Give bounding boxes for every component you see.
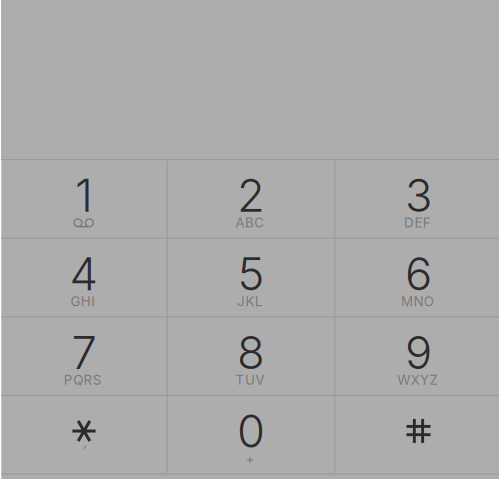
staticText: MNO — [401, 277, 436, 309]
staticText: WXYZ — [397, 356, 440, 388]
staticText — [417, 434, 419, 467]
staticText: 0 — [237, 404, 265, 458]
staticText: 8 — [237, 325, 265, 380]
staticText: PQRS — [64, 356, 104, 388]
button[interactable] — [335, 396, 499, 473]
button[interactable]: 6 — [335, 239, 499, 316]
staticText: 2 — [237, 168, 265, 223]
staticText: 6 — [405, 246, 432, 301]
button[interactable]: 8 — [168, 317, 334, 395]
staticText: + — [245, 434, 257, 467]
button[interactable]: 0 — [168, 396, 334, 473]
staticText: ABC — [235, 199, 266, 231]
staticText: 9 — [405, 325, 432, 380]
staticText: GHI — [70, 277, 97, 309]
button[interactable]: 1 — [1, 160, 167, 238]
button[interactable]: 2 — [168, 160, 334, 238]
button[interactable]: 7 — [1, 317, 167, 395]
staticText: TUV — [235, 356, 266, 388]
button[interactable]: 4 — [1, 239, 167, 316]
button[interactable]: 3 — [335, 160, 499, 238]
staticText: 7 — [71, 325, 96, 380]
button[interactable]: 5 — [168, 239, 334, 316]
button[interactable]: , — [1, 396, 167, 473]
staticText: 5 — [238, 246, 265, 301]
staticText: DEF — [404, 199, 433, 231]
staticText: 1 — [75, 168, 93, 223]
button[interactable]: 9 — [335, 317, 499, 395]
staticText: , — [81, 434, 87, 467]
staticText: 4 — [69, 246, 98, 301]
staticText: JKL — [237, 277, 265, 309]
staticText: 3 — [405, 168, 432, 223]
